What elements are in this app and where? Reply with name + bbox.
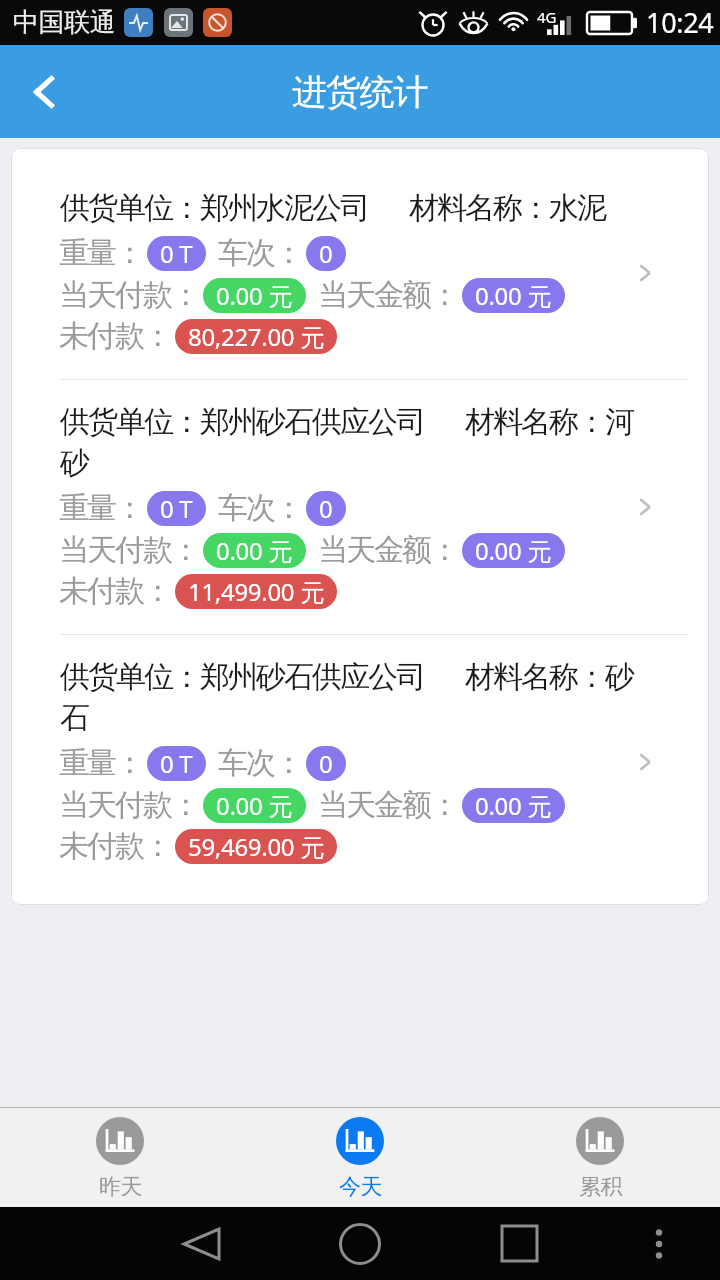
staticText: 0 T bbox=[160, 237, 193, 270]
staticText: 0 T bbox=[160, 492, 193, 525]
staticText: 59,469.00 元 bbox=[188, 830, 324, 863]
staticText: 当天金额： bbox=[319, 276, 459, 314]
staticText: 0 bbox=[319, 237, 333, 270]
staticText: 0.00 元 bbox=[475, 534, 552, 567]
button[interactable]: 昨天 bbox=[0, 1108, 240, 1207]
staticText: 11,499.00 元 bbox=[188, 575, 324, 608]
button[interactable]: More options bbox=[644, 1207, 674, 1280]
button[interactable]: Recents bbox=[499, 1207, 539, 1280]
staticText: 供货单位：郑州砂石供应公司 材料名称：砂石 bbox=[60, 655, 645, 737]
staticText: 0 T bbox=[160, 747, 193, 780]
staticText: 重量： bbox=[60, 234, 144, 272]
staticText: 0.00 元 bbox=[216, 789, 293, 822]
staticText: 80,227.00 元 bbox=[188, 320, 324, 353]
staticText: 0.00 元 bbox=[475, 789, 552, 822]
staticText: 中国联通 bbox=[13, 6, 116, 39]
staticText: 未付款： bbox=[60, 572, 172, 610]
staticText: 当天付款： bbox=[60, 786, 200, 824]
staticText: 0.00 元 bbox=[216, 534, 293, 567]
staticText: 车次： bbox=[219, 489, 303, 527]
button[interactable]: Back bbox=[0, 45, 88, 138]
staticText: 进货统计 bbox=[292, 70, 428, 114]
staticText: 供货单位：郑州砂石供应公司 材料名称：河砂 bbox=[60, 400, 645, 482]
staticText: 0.00 元 bbox=[216, 279, 293, 312]
button[interactable]: 供货单位：郑州水泥公司 材料名称：水泥 bbox=[11, 166, 709, 379]
staticText: 0.00 元 bbox=[475, 279, 552, 312]
button[interactable]: 供货单位：郑州砂石供应公司 材料名称：河砂 bbox=[11, 380, 709, 634]
staticText: 车次： bbox=[219, 234, 303, 272]
button[interactable]: Back bbox=[181, 1207, 221, 1280]
staticText: 0 bbox=[319, 747, 333, 780]
staticText: 车次： bbox=[219, 744, 303, 782]
staticText: 当天金额： bbox=[319, 531, 459, 569]
staticText: 未付款： bbox=[60, 317, 172, 355]
staticText: 当天金额： bbox=[319, 786, 459, 824]
button[interactable]: 供货单位：郑州砂石供应公司 材料名称：砂石 bbox=[11, 635, 709, 889]
staticText: 当天付款： bbox=[60, 276, 200, 314]
staticText: 0 bbox=[319, 492, 333, 525]
staticText: 今天 bbox=[339, 1173, 382, 1201]
staticText: 供货单位：郑州水泥公司 材料名称：水泥 bbox=[60, 186, 605, 227]
staticText: 当天付款： bbox=[60, 531, 200, 569]
button[interactable]: 累积 bbox=[480, 1108, 720, 1207]
button[interactable]: 今天 bbox=[240, 1108, 480, 1207]
staticText: 10:24 bbox=[646, 4, 714, 41]
staticText: 重量： bbox=[60, 489, 144, 527]
staticText: 重量： bbox=[60, 744, 144, 782]
staticText: 4G bbox=[537, 7, 557, 27]
button[interactable]: Home bbox=[339, 1207, 381, 1280]
staticText: 未付款： bbox=[60, 827, 172, 865]
staticText: 累积 bbox=[579, 1173, 622, 1201]
staticText: 昨天 bbox=[99, 1173, 142, 1201]
